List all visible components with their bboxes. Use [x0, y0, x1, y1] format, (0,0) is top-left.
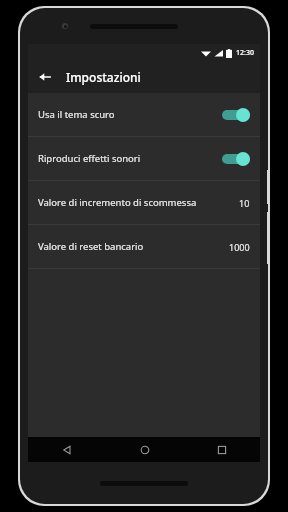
button[interactable]: Valore di reset bancario: [28, 225, 260, 268]
button[interactable]: Back: [32, 64, 58, 90]
staticText: 12:30: [236, 48, 254, 58]
button[interactable]: Recent apps: [183, 437, 260, 462]
staticText: 10: [239, 197, 250, 209]
staticText: Riproduci effetti sonori: [38, 152, 222, 165]
staticText: Valore di reset bancario: [38, 240, 223, 253]
staticText: Usa il tema scuro: [38, 108, 222, 121]
staticText: Impostazioni: [66, 69, 141, 85]
staticText: Valore di incremento di scommessa: [38, 196, 233, 209]
staticText: 1000: [229, 241, 250, 253]
button[interactable]: Home: [106, 437, 183, 462]
button[interactable]: Valore di incremento di scommessa: [28, 181, 260, 224]
button[interactable]: Back: [28, 437, 106, 462]
button[interactable]: Usa il tema scuro: [28, 93, 260, 136]
button[interactable]: Riproduci effetti sonori: [28, 137, 260, 180]
